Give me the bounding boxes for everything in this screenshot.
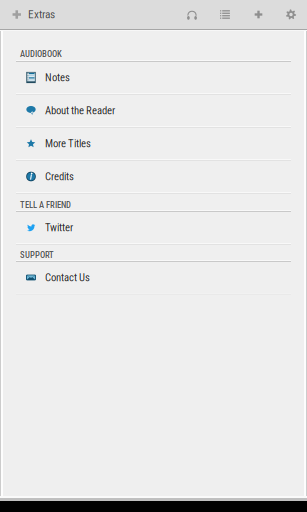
staticText: Credits [45,170,74,183]
button[interactable]: Chapters [208,0,242,29]
button[interactable]: Add bookmark [242,0,275,29]
button[interactable]: About the Reader [3,95,304,128]
staticText: Twitter [45,221,73,234]
staticText: Notes [45,71,70,84]
button[interactable]: Extras [0,0,55,29]
button[interactable]: Notes [3,62,304,95]
staticText: About the Reader [45,104,115,117]
staticText: AUDIOBOOK [20,49,62,59]
button[interactable]: More Titles [3,128,304,161]
button[interactable]: Credits [3,161,304,194]
staticText: TELL A FRIEND [20,200,71,210]
button[interactable]: Contact Us [3,262,304,295]
staticText: SUPPORT [20,250,54,260]
staticText: Contact Us [45,271,90,284]
staticText: More Titles [45,137,91,150]
button[interactable]: Settings [275,0,307,29]
button[interactable]: Audio player [176,0,208,29]
staticText: Extras [28,8,55,21]
button[interactable]: Twitter [3,212,304,245]
